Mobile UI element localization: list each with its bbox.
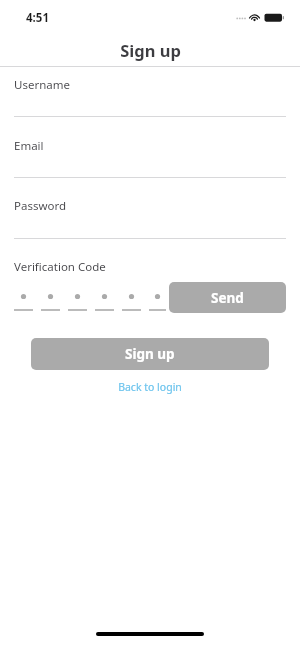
button[interactable] (41, 288, 60, 312)
staticText: Verification Code (14, 259, 106, 275)
staticText: 4:51 (26, 10, 49, 26)
staticText: Back to login (118, 380, 182, 394)
button[interactable] (122, 288, 141, 312)
button[interactable]: Back to login (0, 376, 300, 398)
button[interactable]: Send (169, 282, 286, 313)
button[interactable]: Sign up (31, 338, 269, 370)
staticText: Send (211, 289, 244, 307)
staticText: Sign up (125, 345, 175, 363)
button[interactable]: Password (0, 192, 300, 240)
staticText: Password (14, 198, 67, 214)
staticText: Sign up (120, 39, 181, 61)
button[interactable]: Username (0, 71, 300, 118)
button[interactable] (14, 288, 33, 312)
staticText: Username (14, 77, 70, 93)
button[interactable] (149, 288, 166, 312)
button[interactable]: Email (0, 132, 300, 179)
button[interactable] (95, 288, 114, 312)
staticText: Email (14, 138, 44, 154)
button[interactable] (68, 288, 87, 312)
